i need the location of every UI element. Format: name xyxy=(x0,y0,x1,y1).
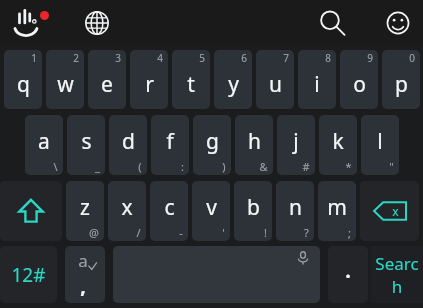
staticText: h xyxy=(248,127,261,156)
staticText: ' xyxy=(222,225,225,240)
staticText: z xyxy=(80,193,90,222)
button[interactable]: j xyxy=(277,115,315,175)
staticText: 3 xyxy=(115,51,121,65)
staticText: a xyxy=(38,127,50,156)
staticText: 0 xyxy=(409,51,415,65)
staticText: a xyxy=(78,249,88,272)
button[interactable]: 6 xyxy=(214,50,252,109)
button[interactable]: m xyxy=(318,181,356,241)
button[interactable]: f xyxy=(151,115,189,175)
staticText: ) xyxy=(222,159,226,174)
staticText: k xyxy=(332,127,344,156)
staticText: 12# xyxy=(11,262,46,288)
button[interactable]: Space xyxy=(113,246,320,303)
staticText: # xyxy=(302,159,310,174)
staticText: ? xyxy=(304,225,309,240)
staticText: b xyxy=(247,193,260,222)
button[interactable]: 4 xyxy=(130,50,168,109)
button[interactable]: . xyxy=(328,246,368,303)
staticText: p xyxy=(395,70,408,99)
button[interactable]: d xyxy=(109,115,147,175)
button[interactable]: 3 xyxy=(88,50,126,109)
staticText: 7 xyxy=(283,51,289,65)
staticText: d xyxy=(122,127,135,156)
staticText: - xyxy=(179,225,183,240)
staticText: m xyxy=(327,193,347,222)
button[interactable]: v xyxy=(192,181,230,241)
staticText: o xyxy=(353,70,366,99)
button[interactable]: b xyxy=(234,181,272,241)
button[interactable]: a xyxy=(25,115,63,175)
staticText: l xyxy=(377,127,383,156)
staticText: Search xyxy=(371,252,423,298)
staticText: / xyxy=(136,225,141,240)
button[interactable]: 1 xyxy=(4,50,42,109)
staticText: t xyxy=(187,70,195,99)
staticText: 6 xyxy=(241,51,247,65)
staticText: , xyxy=(80,272,86,299)
staticText: 8 xyxy=(325,51,331,65)
staticText: ( xyxy=(138,159,142,174)
staticText: f xyxy=(166,127,174,156)
staticText: " xyxy=(389,159,394,174)
staticText: 9 xyxy=(367,51,373,65)
staticText: 5 xyxy=(199,51,205,65)
button[interactable]: Backspace xyxy=(360,181,419,241)
staticText: x xyxy=(121,193,133,222)
staticText: x xyxy=(392,203,399,219)
staticText: 4 xyxy=(157,51,163,65)
button[interactable]: h xyxy=(235,115,273,175)
button[interactable]: Shift xyxy=(0,181,62,241)
staticText: j xyxy=(293,127,299,156)
button[interactable]: Switch language xyxy=(80,6,114,40)
staticText: : xyxy=(181,159,184,174)
button[interactable]: 5 xyxy=(172,50,210,109)
staticText: ! xyxy=(264,225,267,240)
button[interactable]: Input options xyxy=(65,246,105,303)
button[interactable]: TouchPal menu xyxy=(10,4,48,42)
button[interactable]: z xyxy=(66,181,104,241)
staticText: w xyxy=(57,70,74,99)
button[interactable]: 0 xyxy=(382,50,420,109)
button[interactable]: n xyxy=(276,181,314,241)
button[interactable]: s xyxy=(67,115,105,175)
button[interactable]: g xyxy=(193,115,231,175)
staticText: y xyxy=(228,70,239,99)
button[interactable]: 12# xyxy=(0,246,57,303)
staticText: v xyxy=(206,193,217,222)
button[interactable]: k xyxy=(319,115,357,175)
button[interactable]: l xyxy=(361,115,399,175)
staticText: 2 xyxy=(73,51,79,65)
button[interactable]: x xyxy=(108,181,146,241)
staticText: \ xyxy=(53,159,58,174)
staticText: . xyxy=(345,257,351,284)
staticText: u xyxy=(269,70,282,99)
button[interactable]: c xyxy=(150,181,188,241)
staticText: s xyxy=(81,127,92,156)
staticText: * xyxy=(345,159,352,174)
button[interactable]: 9 xyxy=(340,50,378,109)
button[interactable]: Search xyxy=(315,6,349,40)
staticText: & xyxy=(259,159,268,174)
staticText: c xyxy=(164,193,175,222)
button[interactable]: 7 xyxy=(256,50,294,109)
staticText: _ xyxy=(95,159,100,174)
staticText: e xyxy=(101,70,113,99)
button[interactable]: Search xyxy=(371,246,423,303)
staticText: 1 xyxy=(31,51,37,65)
button[interactable]: 8 xyxy=(298,50,336,109)
staticText: r xyxy=(145,70,154,99)
staticText: ; xyxy=(348,225,351,240)
button[interactable]: Emoji xyxy=(381,6,415,40)
button[interactable]: 2 xyxy=(46,50,84,109)
staticText: q xyxy=(17,70,30,99)
staticText: g xyxy=(206,127,219,156)
staticText: n xyxy=(289,193,302,222)
staticText: @ xyxy=(89,225,99,240)
staticText: i xyxy=(314,70,320,99)
